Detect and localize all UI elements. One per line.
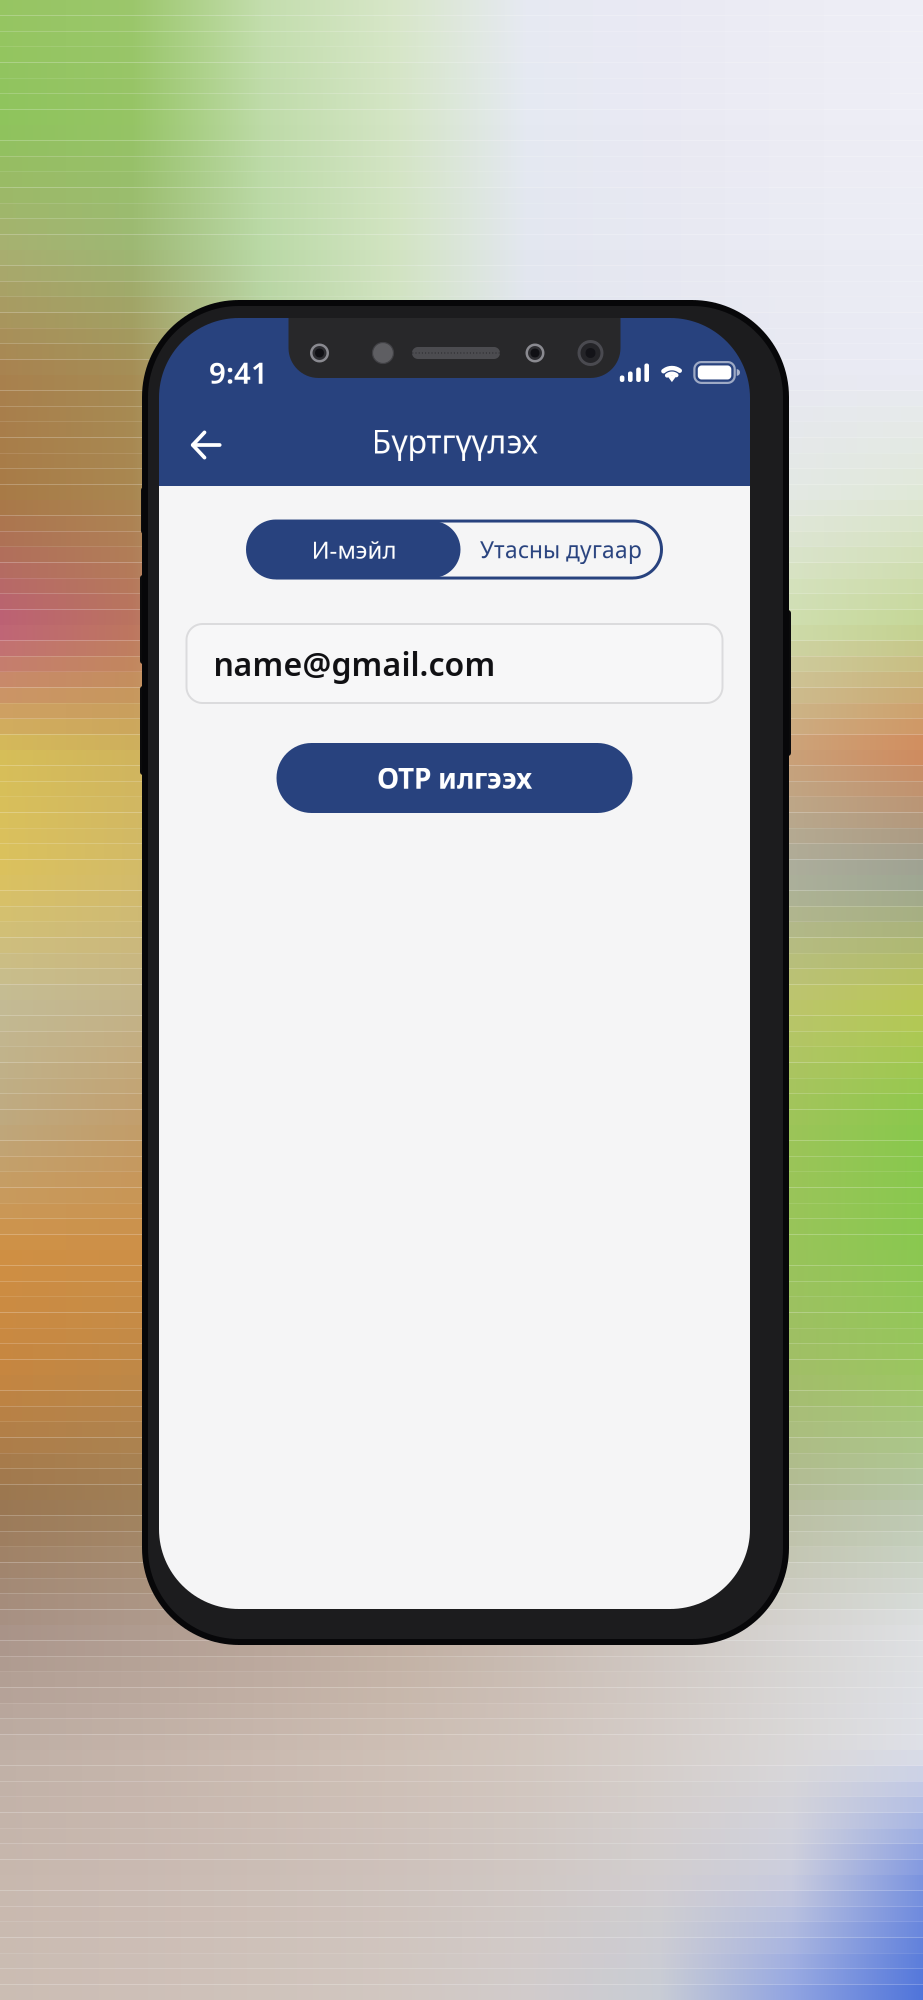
staticText: name@gmail.com (213, 642, 495, 685)
button[interactable]: И-мэйл (247, 521, 460, 578)
staticText: Бүртгүүлэх (371, 420, 537, 462)
staticText: OTP илгээх (377, 759, 532, 797)
staticText: И-мэйл (311, 534, 396, 565)
staticText: Утасны дугаар (480, 534, 642, 564)
button[interactable]: Утасны дугаар (460, 521, 661, 578)
button[interactable]: OTP илгээх (276, 743, 632, 813)
button[interactable]: Back (172, 407, 240, 475)
staticText: 9:41 (209, 353, 268, 392)
button[interactable]: name@gmail.com (186, 624, 722, 703)
